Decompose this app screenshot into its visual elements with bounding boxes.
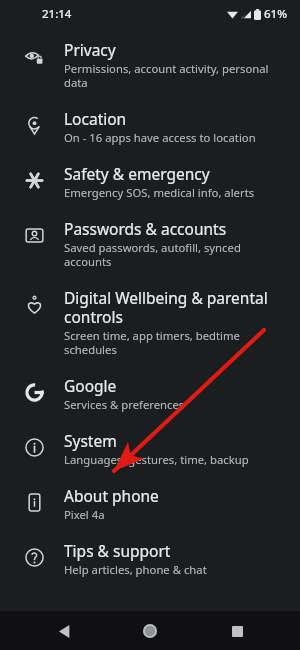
staticText: System bbox=[64, 430, 117, 451]
staticText: Languages, gestures, time, backup bbox=[64, 452, 249, 467]
button[interactable]: Google bbox=[0, 366, 300, 421]
staticText: On - 16 apps have access to location bbox=[64, 130, 256, 145]
staticText: Services & preferences bbox=[64, 397, 185, 412]
staticText: 61% bbox=[264, 6, 287, 22]
staticText: Tips & support bbox=[64, 540, 171, 561]
button[interactable]: About phone bbox=[0, 476, 300, 531]
button[interactable]: Back bbox=[48, 616, 78, 646]
staticText: Help articles, phone & chat bbox=[64, 562, 207, 577]
button[interactable]: Tips & support bbox=[0, 531, 300, 586]
button[interactable]: Digital Wellbeing & parental controls bbox=[0, 278, 300, 366]
button[interactable]: Location bbox=[0, 99, 300, 154]
button[interactable]: Privacy bbox=[0, 30, 300, 99]
staticText: Google bbox=[64, 375, 117, 396]
staticText: Pixel 4a bbox=[64, 507, 105, 522]
button[interactable]: Passwords & accounts bbox=[0, 209, 300, 278]
staticText: Privacy bbox=[64, 39, 116, 60]
staticText: Emergency SOS, medical info, alerts bbox=[64, 185, 255, 200]
button[interactable]: System bbox=[0, 421, 300, 476]
staticText: Safety & emergency bbox=[64, 163, 210, 184]
button[interactable]: Safety & emergency bbox=[0, 154, 300, 209]
staticText: Digital Wellbeing & parental controls bbox=[64, 287, 284, 327]
staticText: Screen time, app timers, bedtime schedul… bbox=[64, 328, 284, 357]
staticText: 21:14 bbox=[42, 6, 72, 22]
staticText: Saved passwords, autofill, synced accoun… bbox=[64, 240, 284, 269]
staticText: Permissions, account activity, personal … bbox=[64, 61, 284, 90]
staticText: About phone bbox=[64, 485, 159, 506]
button[interactable]: Recent apps bbox=[222, 616, 252, 646]
staticText: Passwords & accounts bbox=[64, 218, 227, 239]
staticText: Location bbox=[64, 108, 127, 129]
button[interactable]: Home bbox=[135, 616, 165, 646]
